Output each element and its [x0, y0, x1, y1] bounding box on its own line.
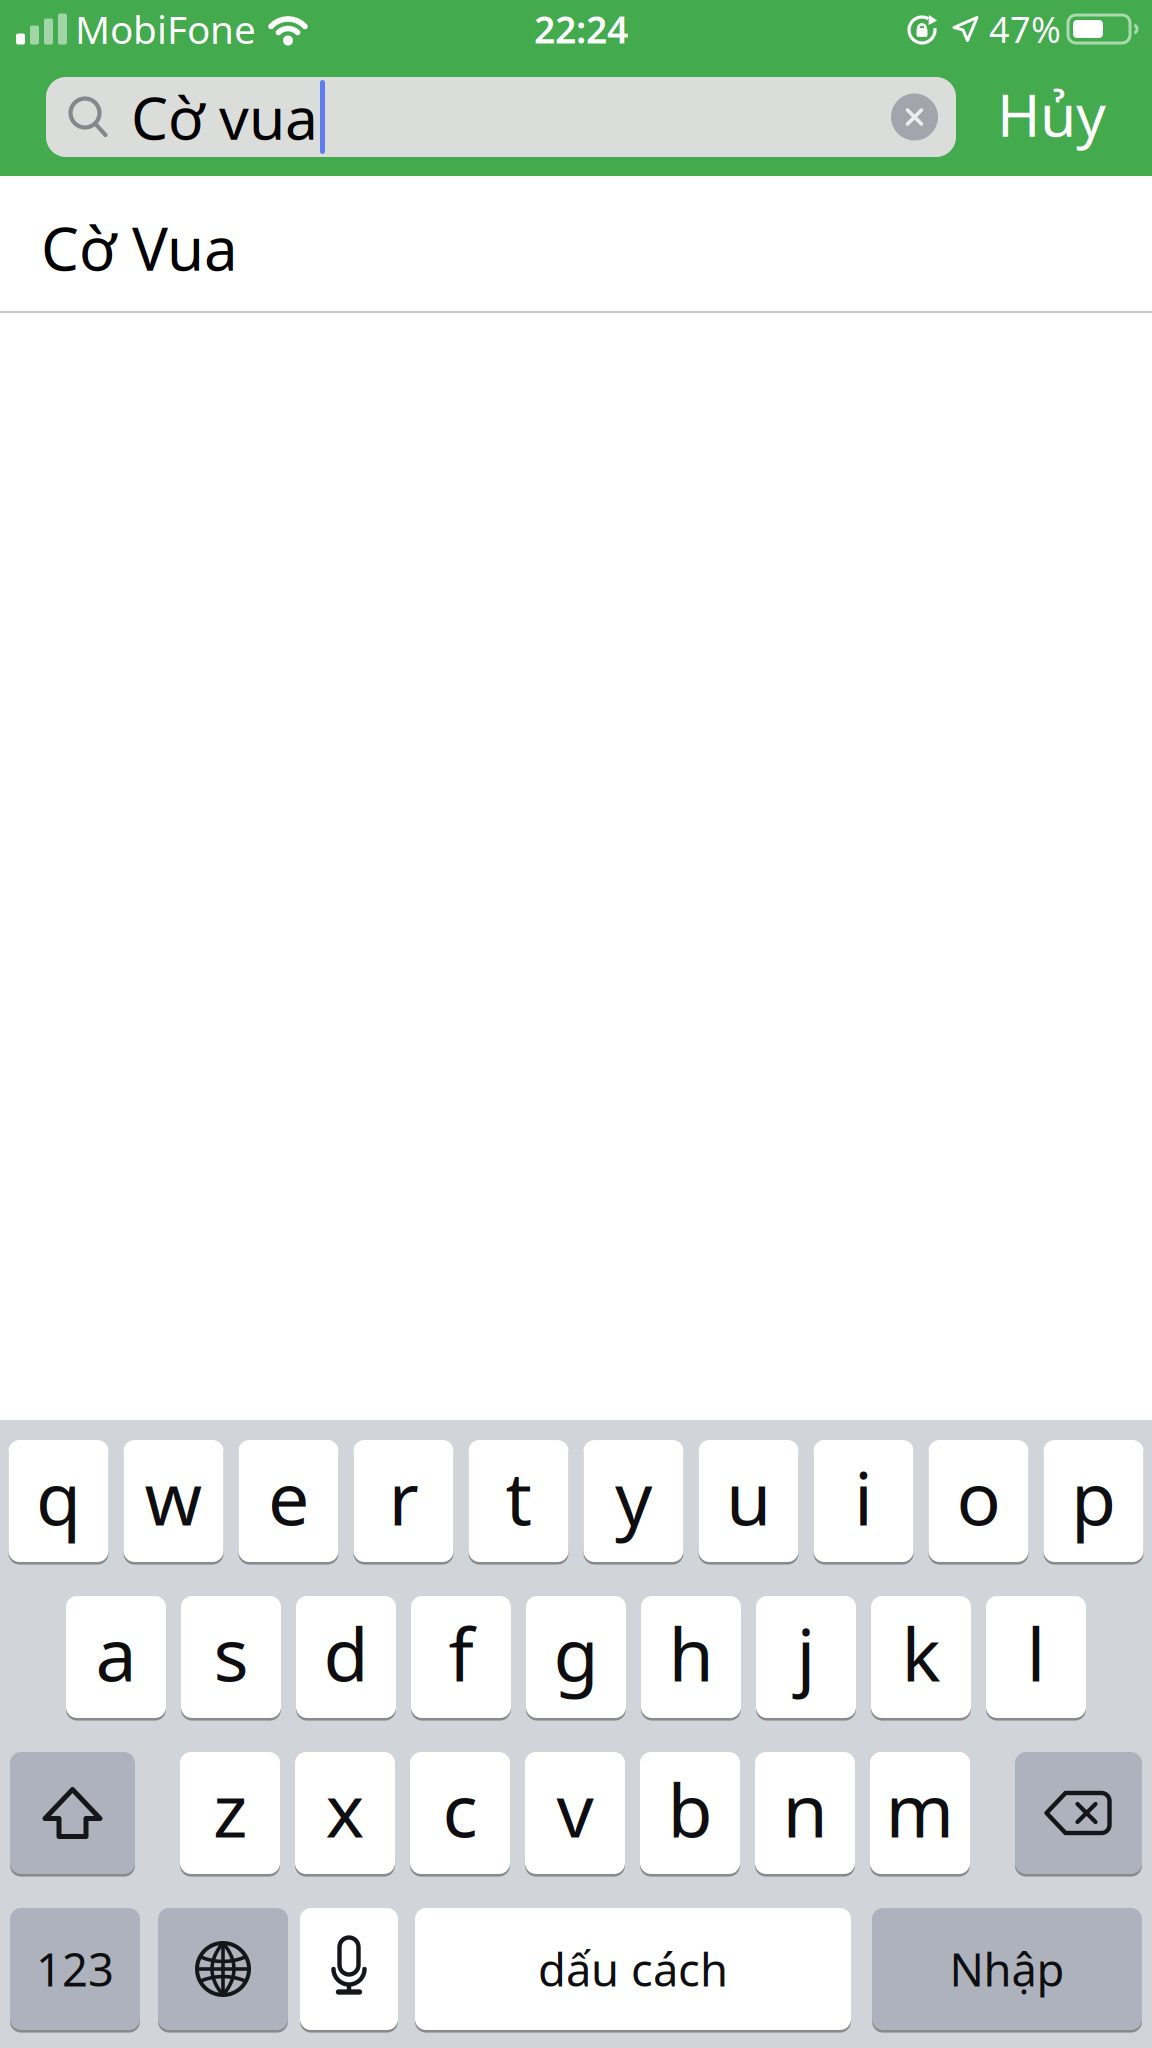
staticText: Cờ vua [131, 78, 318, 156]
staticText: d [323, 1604, 368, 1702]
button[interactable]: 123 [10, 1908, 140, 2030]
staticText: c [442, 1760, 477, 1858]
staticText: Hủy [997, 75, 1106, 153]
button[interactable]: Clear text [891, 93, 956, 140]
button[interactable]: Shift [10, 1752, 135, 1874]
button[interactable]: Dictate [300, 1908, 398, 2030]
staticText: w [144, 1448, 202, 1546]
button[interactable]: dấu cách [415, 1908, 851, 2030]
button[interactable]: v [525, 1752, 625, 1874]
button[interactable]: j [756, 1596, 856, 1718]
button[interactable]: Next keyboard [158, 1908, 288, 2030]
staticText: q [36, 1448, 81, 1546]
staticText: y [615, 1448, 652, 1546]
button[interactable]: s [181, 1596, 281, 1718]
staticText: 47% [989, 5, 1061, 53]
staticText: p [1071, 1448, 1116, 1546]
staticText: g [553, 1604, 598, 1702]
staticText: h [668, 1604, 713, 1702]
button[interactable]: q [8, 1440, 108, 1562]
staticText: s [213, 1604, 248, 1702]
button[interactable]: e [238, 1440, 338, 1562]
staticText: MobiFone [75, 3, 256, 55]
staticText: j [796, 1604, 815, 1702]
staticText: v [556, 1760, 593, 1858]
button[interactable]: t [468, 1440, 568, 1562]
button[interactable]: Nhập [872, 1908, 1142, 2030]
staticText: x [325, 1760, 364, 1858]
staticText: u [726, 1448, 771, 1546]
button[interactable]: l [986, 1596, 1086, 1718]
staticText: l [1026, 1604, 1045, 1702]
staticText: t [505, 1448, 531, 1546]
button[interactable]: m [870, 1752, 970, 1874]
staticText: o [956, 1448, 1000, 1546]
staticText: a [95, 1604, 136, 1702]
staticText: dấu cách [538, 1939, 728, 1999]
staticText: k [901, 1604, 940, 1702]
button[interactable]: o [928, 1440, 1028, 1562]
staticText: 123 [36, 1939, 114, 1999]
button[interactable]: z [180, 1752, 280, 1874]
button[interactable]: d [296, 1596, 396, 1718]
button[interactable]: h [641, 1596, 741, 1718]
button[interactable]: Delete [1015, 1752, 1142, 1874]
staticText: z [213, 1760, 247, 1858]
staticText: Cờ Vua [41, 208, 238, 287]
button[interactable]: f [411, 1596, 511, 1718]
button[interactable]: i [813, 1440, 913, 1562]
button[interactable]: w [123, 1440, 223, 1562]
button[interactable]: a [66, 1596, 166, 1718]
staticText: r [388, 1448, 418, 1546]
button[interactable]: y [583, 1440, 683, 1562]
button[interactable]: g [526, 1596, 626, 1718]
staticText: Nhập [949, 1939, 1064, 1999]
button[interactable]: u [698, 1440, 798, 1562]
button[interactable]: b [640, 1752, 740, 1874]
staticText: b [667, 1760, 712, 1858]
button[interactable]: Search [46, 77, 956, 157]
button[interactable]: x [295, 1752, 395, 1874]
staticText: 22:24 [534, 4, 628, 54]
button[interactable]: n [755, 1752, 855, 1874]
staticText: i [854, 1448, 873, 1546]
button[interactable]: Cờ Vua [0, 176, 1152, 311]
button[interactable]: Hủy [997, 78, 1152, 156]
button[interactable]: p [1043, 1440, 1143, 1562]
button[interactable]: c [410, 1752, 510, 1874]
staticText: n [782, 1760, 827, 1858]
staticText: e [268, 1448, 309, 1546]
button[interactable]: r [353, 1440, 453, 1562]
staticText: m [885, 1760, 954, 1858]
staticText: f [448, 1604, 473, 1702]
button[interactable]: k [871, 1596, 971, 1718]
